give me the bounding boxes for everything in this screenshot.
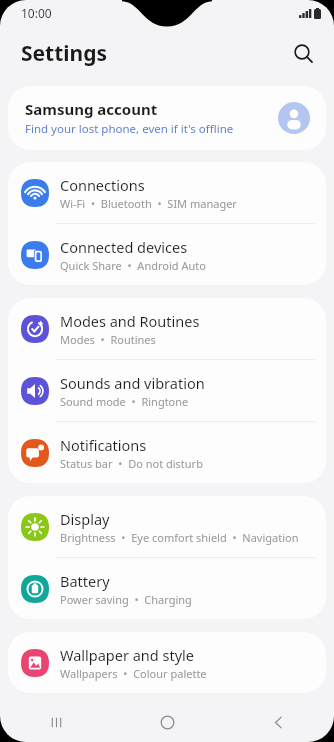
staticText: Connected devices: [60, 237, 188, 257]
button[interactable]: Sounds and vibration: [8, 360, 326, 421]
button[interactable]: Wallpaper and style: [8, 632, 326, 693]
staticText: Notifications: [60, 435, 147, 455]
staticText: Power saving • Charging: [60, 592, 192, 607]
staticText: Display: [60, 509, 110, 529]
button[interactable]: Samsung account: [8, 86, 326, 150]
button[interactable]: Notifications: [8, 422, 326, 483]
button[interactable]: Battery: [8, 558, 326, 619]
staticText: Samsung account: [25, 99, 158, 119]
staticText: Wallpaper and style: [60, 645, 194, 665]
staticText: Wallpapers • Colour palette: [60, 666, 207, 681]
staticText: Sound mode • Ringtone: [60, 394, 189, 409]
button[interactable]: Connections: [8, 162, 326, 223]
staticText: Quick Share • Android Auto: [60, 258, 206, 273]
button[interactable]: Back: [250, 702, 306, 742]
button[interactable]: Connected devices: [8, 224, 326, 285]
button[interactable]: Modes and Routines: [8, 298, 326, 359]
staticText: Sounds and vibration: [60, 373, 205, 393]
staticText: Wi-Fi • Bluetooth • SIM manager: [60, 196, 237, 211]
staticText: Status bar • Do not disturb: [60, 456, 203, 471]
staticText: Find your lost phone, even if it's offli…: [25, 121, 234, 137]
button[interactable]: Search: [282, 32, 324, 74]
staticText: Modes and Routines: [60, 311, 200, 331]
button[interactable]: Home: [139, 702, 195, 742]
staticText: Settings: [21, 39, 108, 68]
staticText: Connections: [60, 175, 145, 195]
staticText: Modes • Routines: [60, 332, 156, 347]
staticText: Brightness • Eye comfort shield • Naviga…: [60, 530, 314, 545]
button[interactable]: Recents: [28, 702, 84, 742]
staticText: 10:00: [21, 5, 52, 21]
button[interactable]: Display: [8, 496, 326, 557]
staticText: Battery: [60, 571, 110, 591]
